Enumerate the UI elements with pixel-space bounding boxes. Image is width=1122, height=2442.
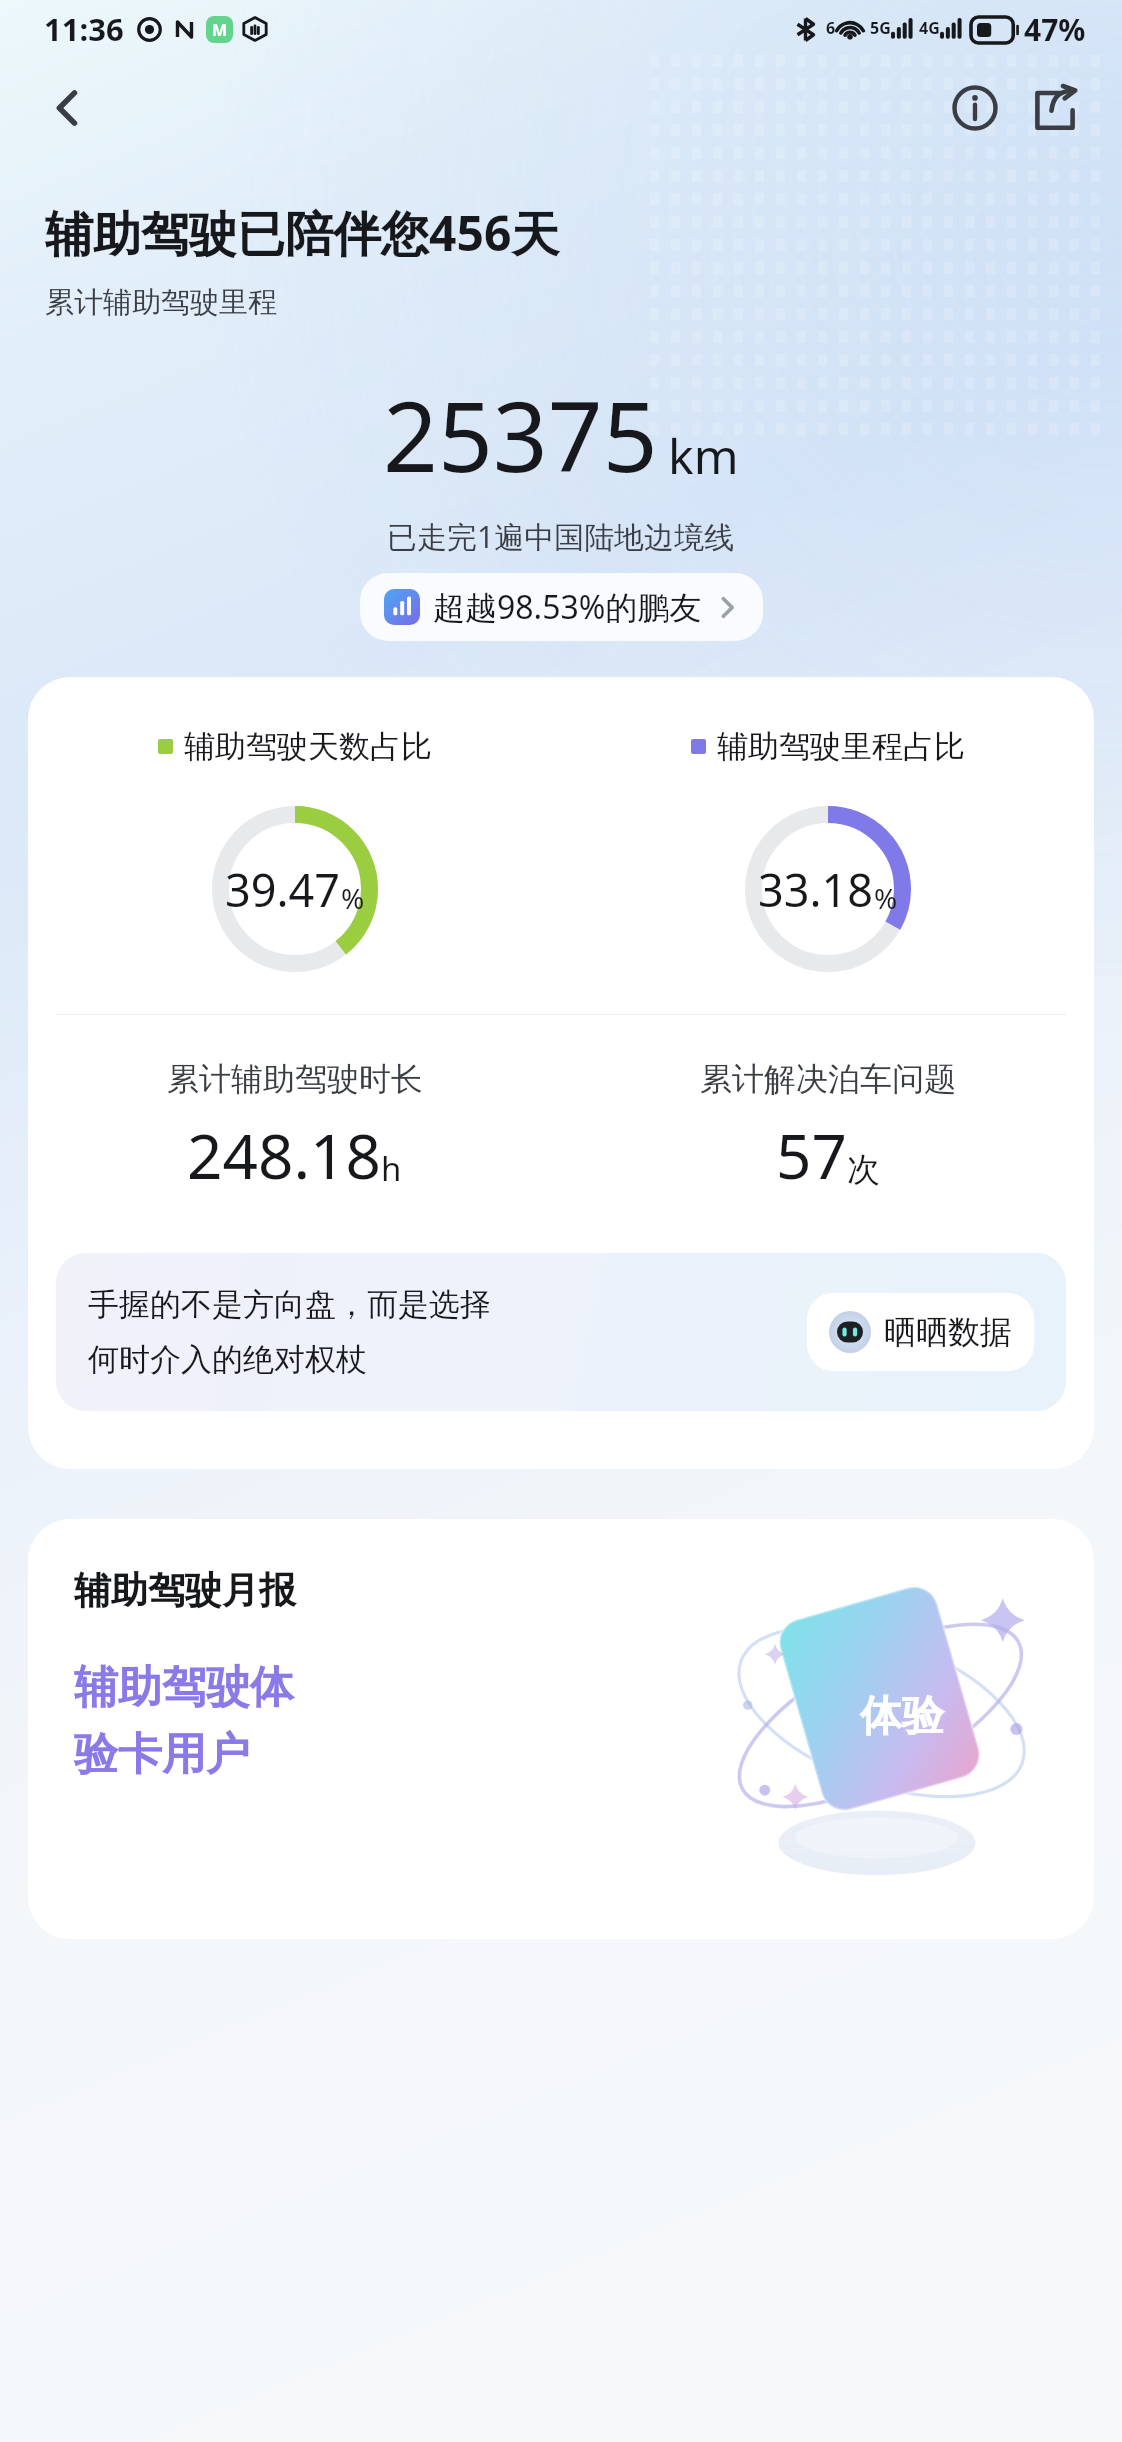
staticText: 47% [1024, 9, 1086, 50]
staticText: 辅助驾驶已陪伴您456天 [45, 200, 560, 266]
staticText: h [381, 1146, 402, 1191]
staticText: 次 [847, 1149, 880, 1191]
staticText: 6 [826, 17, 836, 39]
staticText: M [212, 19, 228, 41]
staticText: 辅助驾驶天数占比 [184, 727, 432, 766]
staticText: 何时介入的绝对权杖 [88, 1340, 367, 1379]
button[interactable]: Info [942, 75, 1008, 141]
staticText: km [668, 423, 739, 488]
staticText: 辅助驾驶里程占比 [717, 727, 965, 766]
staticText: 248.18 [187, 1113, 381, 1197]
staticText: 辅助驾驶月报 [74, 1567, 296, 1614]
button[interactable]: 体验 [28, 1519, 1094, 1939]
staticText: 体验 [860, 1690, 944, 1743]
staticText: 11:36 [44, 8, 124, 50]
staticText: 辅助驾驶体 [74, 1660, 294, 1715]
staticText: % [874, 879, 898, 917]
staticText: 57 [776, 1113, 847, 1197]
staticText: 39.47 [225, 859, 341, 920]
staticText: 验卡用户 [74, 1727, 250, 1782]
button[interactable]: Back [36, 76, 100, 140]
staticText: 累计辅助驾驶里程 [45, 284, 277, 321]
staticText: 25375 [383, 369, 658, 500]
staticText: 5G [870, 17, 891, 39]
staticText: 超越98.53%的鹏友 [433, 585, 702, 629]
staticText: 累计辅助驾驶时长 [167, 1059, 423, 1099]
staticText: 手握的不是方向盘，而是选择 [88, 1285, 491, 1324]
staticText: 已走完1遍中国陆地边境线 [387, 516, 735, 557]
staticText: % [341, 879, 365, 917]
staticText: 累计解决泊车问题 [700, 1059, 956, 1099]
button[interactable]: Share [1022, 75, 1088, 141]
button[interactable]: 超越98.53%的鹏友 [360, 573, 763, 641]
staticText: 4G [919, 17, 940, 39]
button[interactable]: 晒晒数据 [807, 1293, 1034, 1371]
staticText: 晒晒数据 [884, 1312, 1012, 1352]
staticText: 33.18 [758, 859, 874, 920]
